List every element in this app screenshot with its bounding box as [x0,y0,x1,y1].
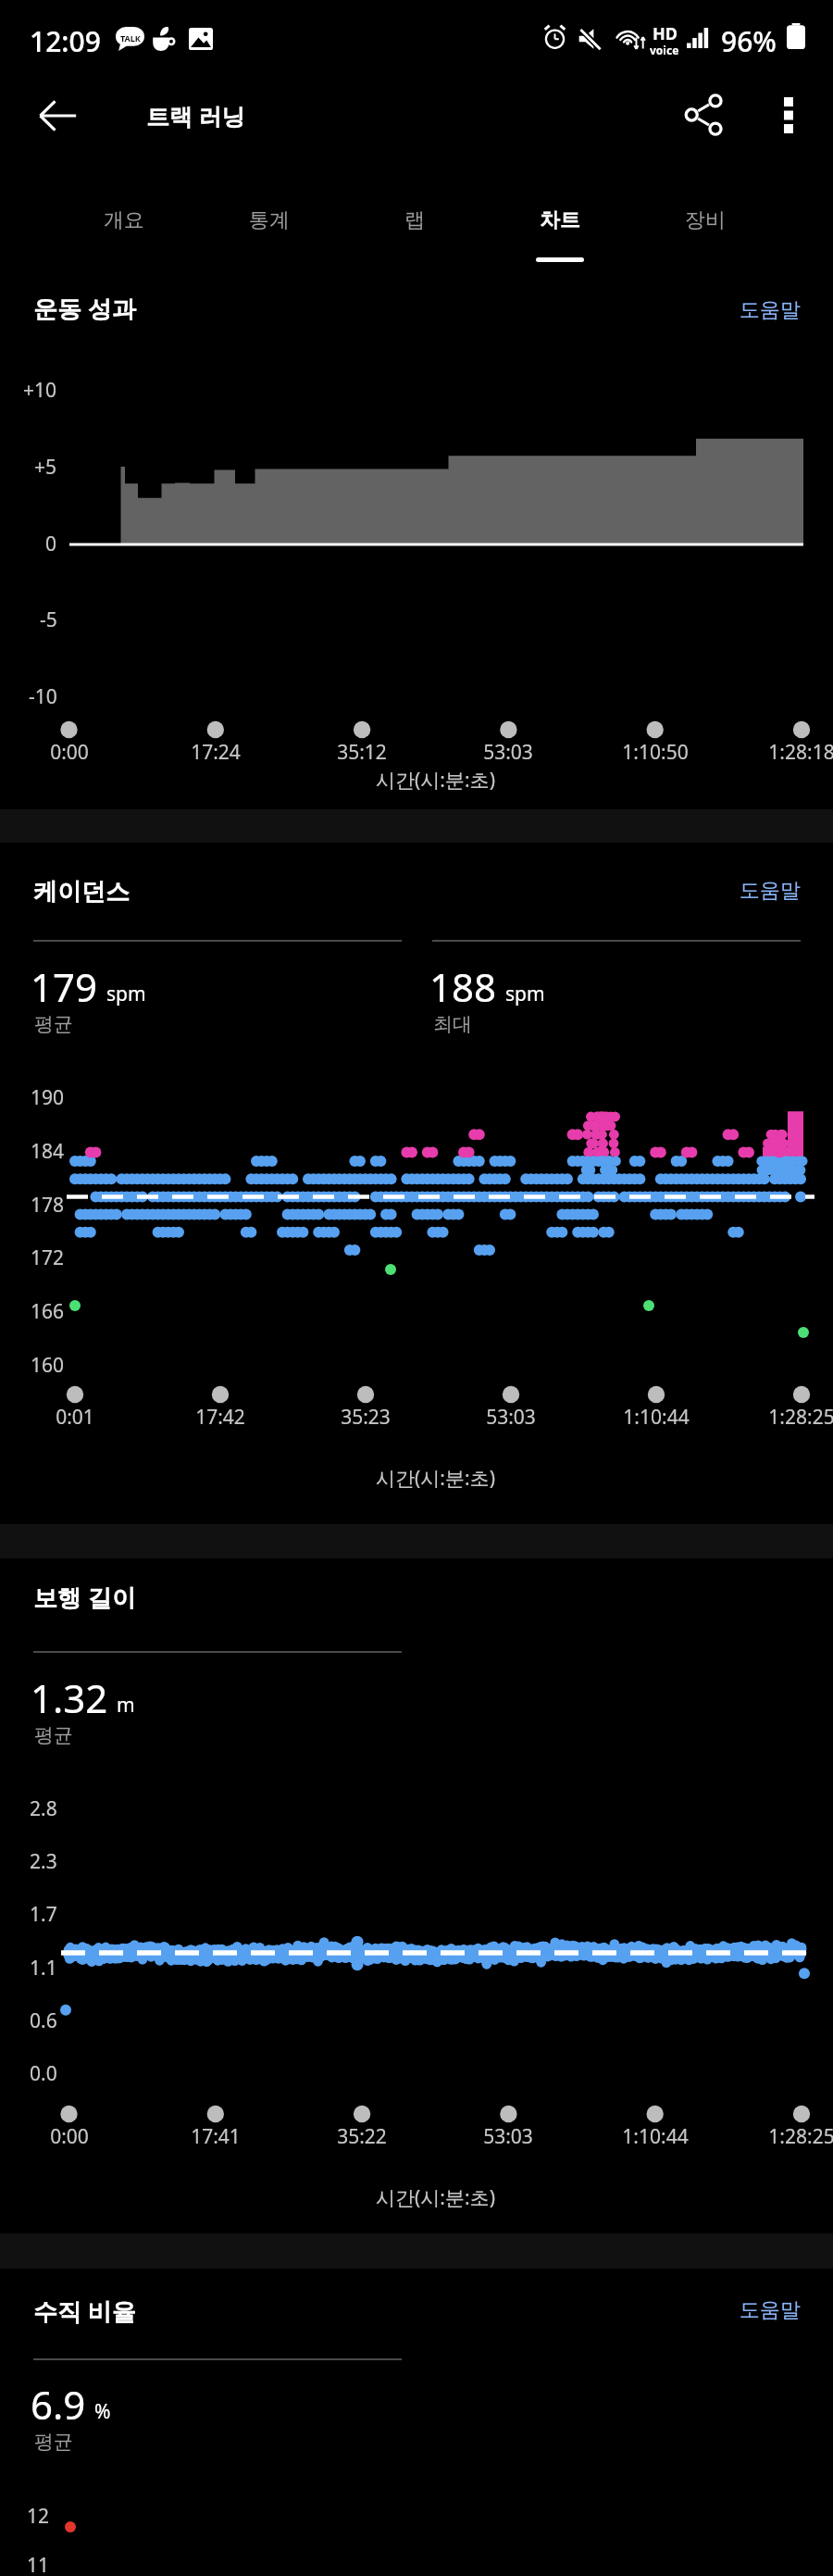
staticText: 179 [31,960,98,1013]
staticText: 1:28:18 [768,739,833,766]
staticText: 166 [31,1298,65,1325]
staticText: 12 [27,2503,50,2530]
staticText: 0:01 [56,1404,94,1431]
staticText: 시간(시:분:초) [376,2184,495,2211]
staticText: 보행 길이 [33,1581,136,1614]
staticText: 장비 [685,207,726,233]
staticText: 1:10:44 [623,1404,690,1431]
staticText: 도움말 [740,878,801,904]
staticText: 184 [31,1138,65,1165]
staticText: 1.32 [31,1671,108,1724]
button[interactable]: 도움말 [739,2290,802,2331]
staticText: 도움말 [740,2297,801,2323]
button[interactable]: 개요 [52,176,196,265]
staticText: 평균 [34,2430,73,2454]
staticText: 0.6 [30,2007,57,2034]
staticText: 2.8 [30,1795,57,1822]
staticText: spm [106,981,146,1007]
staticText: 160 [31,1352,65,1379]
staticText: 12:09 [30,22,101,60]
staticText: 2.3 [30,1848,57,1875]
staticText: TALK [120,32,141,44]
staticText: 17:41 [191,2123,241,2150]
staticText: +10 [23,377,57,404]
staticText: 188 [429,960,497,1013]
staticText: 도움말 [740,297,801,323]
staticText: 96% [721,22,777,60]
button[interactable]: 통계 [197,176,342,265]
staticText: 0 [45,531,57,557]
staticText: 178 [31,1192,65,1219]
staticText: 53:03 [483,2123,533,2150]
staticText: 1:28:25 [768,2123,833,2150]
button[interactable]: 도움말 [739,870,802,911]
staticText: 평균 [34,1012,73,1036]
button[interactable]: 랩 [342,176,487,265]
staticText: 통계 [249,207,290,233]
staticText: 53:03 [486,1404,536,1431]
button[interactable]: More options [752,78,826,152]
staticText: 17:24 [191,739,241,766]
staticText: voice [650,43,679,57]
staticText: 0:00 [50,2123,89,2150]
staticText: 35:23 [341,1404,391,1431]
staticText: 1:10:50 [622,739,689,766]
staticText: spm [505,981,545,1007]
staticText: 1:28:25 [768,1404,833,1431]
staticText: 190 [31,1084,65,1111]
staticText: 35:22 [337,2123,387,2150]
staticText: 시간(시:분:초) [376,1465,495,1492]
staticText: 35:12 [337,739,387,766]
staticText: 트랙 러닝 [146,100,245,131]
staticText: 평균 [34,1723,73,1747]
staticText: HD [653,22,678,45]
staticText: -5 [40,606,57,633]
staticText: 6.9 [31,2378,86,2431]
staticText: 수직 비율 [33,2295,136,2328]
staticText: 1.7 [30,1901,57,1928]
staticText: 개요 [104,207,144,233]
staticText: m [117,1692,135,1719]
button[interactable]: Back [20,79,94,153]
staticText: 0.0 [30,2060,57,2087]
staticText: 1.1 [30,1955,57,1982]
staticText: 운동 성과 [33,292,136,325]
staticText: 0:00 [50,739,89,766]
staticText: 차트 [540,207,580,233]
staticText: 최대 [433,1012,472,1036]
staticText: 1:10:44 [622,2123,689,2150]
staticText: 케이던스 [33,877,130,907]
staticText: 172 [31,1244,65,1271]
button[interactable]: 차트 [488,176,632,265]
button[interactable]: Share [666,78,740,152]
staticText: 53:03 [483,739,533,766]
staticText: 17:42 [195,1404,245,1431]
staticText: 11 [27,2552,50,2576]
staticText: +5 [34,454,57,481]
staticText: 시간(시:분:초) [376,767,495,794]
button[interactable]: 장비 [633,176,777,265]
staticText: -10 [29,683,57,710]
button[interactable]: 도움말 [739,290,802,331]
staticText: % [94,2398,111,2425]
staticText: 랩 [404,207,425,233]
